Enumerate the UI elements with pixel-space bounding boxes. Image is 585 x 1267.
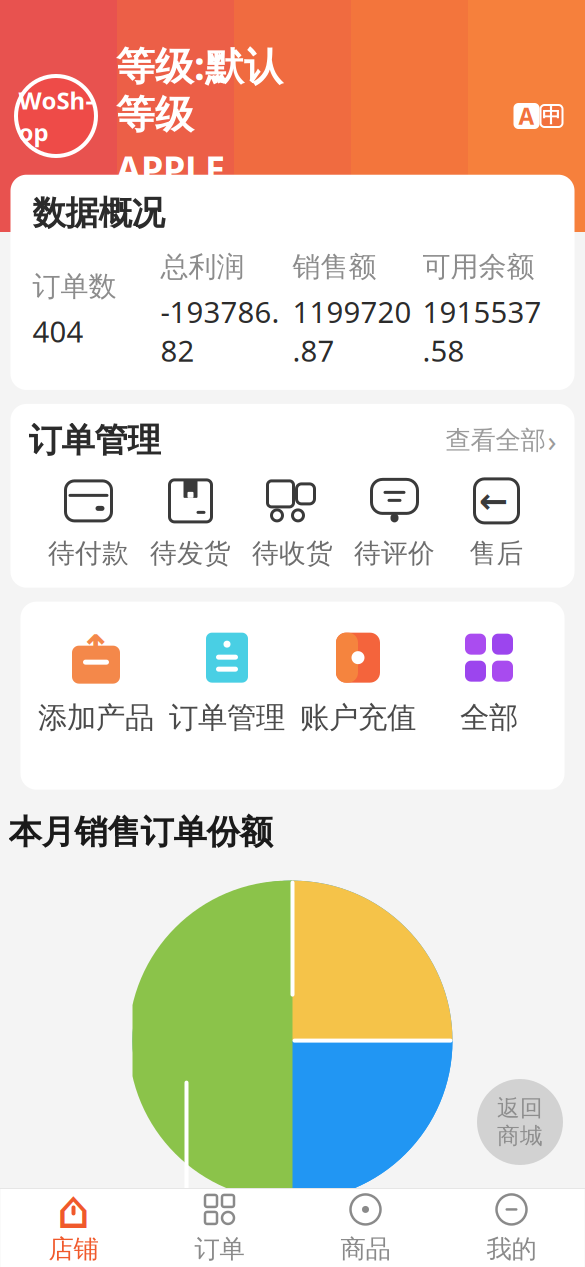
staticText: 中	[542, 104, 561, 127]
button[interactable]: 返回	[477, 1079, 563, 1165]
staticText: 可用余额	[422, 250, 534, 284]
staticText: 待发货	[150, 537, 231, 570]
button[interactable]: ←	[445, 475, 547, 570]
staticText: 返回	[497, 1094, 543, 1122]
button[interactable]: 订单	[146, 1189, 292, 1267]
button[interactable]: 全部	[423, 630, 554, 736]
staticText: 本月销售订单份额	[8, 812, 272, 853]
staticText: ⌂	[56, 1179, 90, 1240]
staticText: 售后	[469, 537, 523, 570]
button[interactable]: 我的	[438, 1189, 584, 1267]
staticText: 404	[32, 311, 83, 350]
button[interactable]: 待发货	[139, 475, 241, 570]
staticText: 待付款	[48, 537, 129, 570]
staticText: 待支付率	[387, 1223, 511, 1260]
button[interactable]: 查看全部	[445, 421, 556, 460]
staticText: 订单数	[32, 269, 116, 303]
staticText: APPLE	[116, 144, 225, 192]
button[interactable]: ↑	[30, 630, 161, 736]
staticText: -193786.82	[160, 292, 279, 370]
button[interactable]: 切换语言	[511, 99, 565, 133]
staticText: A	[518, 101, 534, 131]
button[interactable]: 账户充值	[292, 630, 423, 736]
staticText: ↑	[79, 627, 113, 672]
staticText: 等级:默认等级	[116, 40, 283, 138]
staticText: 订单管理	[28, 420, 160, 461]
staticText: 查看全部	[445, 425, 545, 456]
button[interactable]: 待收货	[241, 475, 343, 570]
button[interactable]: 订单管理	[161, 630, 292, 736]
staticText: 总利润	[160, 250, 244, 284]
staticText: WoShop	[18, 84, 93, 148]
staticText: 订单	[194, 1233, 244, 1264]
staticText: 添加产品	[38, 700, 154, 736]
staticText: 1199720.87	[292, 292, 411, 370]
button[interactable]: 待评价	[343, 475, 445, 570]
button[interactable]: 商品	[292, 1189, 438, 1267]
staticText: ←	[479, 481, 508, 520]
staticText: 1915537.58	[422, 292, 541, 370]
staticText: 商城	[497, 1122, 543, 1150]
staticText: 账户充值	[300, 700, 416, 736]
staticText: 数据概况	[32, 193, 164, 234]
staticText: 店铺	[48, 1233, 98, 1264]
staticText: ›	[547, 421, 556, 460]
staticText: 我的	[486, 1233, 536, 1264]
button[interactable]: ⌂	[0, 1189, 146, 1267]
staticText: 待收货	[252, 537, 333, 570]
staticText: 销售额	[292, 250, 376, 284]
staticText: 待评价	[354, 537, 435, 570]
button[interactable]: 待付款	[37, 475, 139, 570]
staticText: 订单管理	[169, 700, 285, 736]
staticText: 商品	[340, 1233, 390, 1264]
staticText: 全部	[460, 700, 518, 736]
